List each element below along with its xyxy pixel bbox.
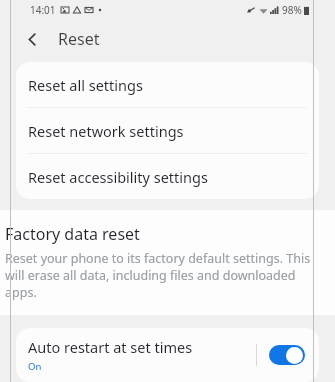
button[interactable]: Factory data reset — [0, 210, 335, 315]
button[interactable]: Reset network settings — [16, 108, 319, 153]
staticText: Reset your phone to its factory default … — [5, 250, 319, 301]
staticText: Reset accessibility settings — [28, 167, 208, 187]
staticText: Reset — [58, 28, 100, 50]
staticText: 14:01 — [30, 3, 56, 17]
button[interactable]: Auto restart at set times — [16, 328, 319, 382]
staticText: On — [28, 360, 42, 373]
button[interactable]: Reset all settings — [16, 62, 319, 107]
staticText: Reset all settings — [28, 75, 143, 95]
button[interactable]: Reset accessibility settings — [16, 154, 319, 199]
staticText: Auto restart at set times — [28, 337, 193, 357]
staticText: 98% — [282, 3, 302, 17]
button[interactable]: Back — [18, 25, 46, 53]
staticText: Factory data reset — [5, 223, 140, 245]
staticText: Reset network settings — [28, 121, 184, 141]
button[interactable]: Auto restart at set times toggle — [269, 345, 305, 365]
